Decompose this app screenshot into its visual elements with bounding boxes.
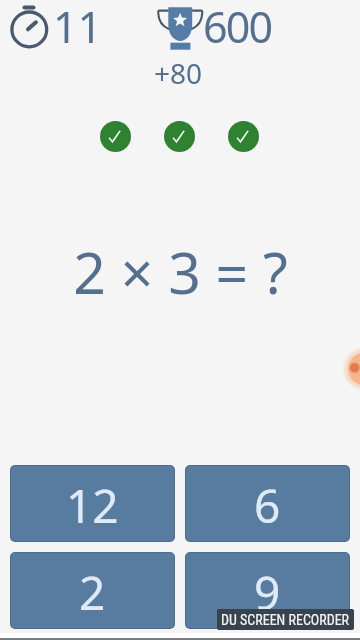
button[interactable]: 2	[10, 552, 175, 629]
staticText: +80	[154, 54, 203, 92]
button[interactable]: 9	[185, 552, 350, 629]
staticText: 2 × 3 = ?	[73, 233, 288, 311]
staticText: 12	[66, 474, 119, 537]
staticText: 6	[254, 474, 281, 537]
staticText: 9	[254, 561, 281, 624]
other: Score	[155, 2, 205, 54]
staticText: 2	[79, 561, 106, 624]
staticText: 600	[203, 0, 272, 56]
staticText: DU SCREEN RECORDER	[221, 612, 350, 628]
button[interactable]: 12	[10, 465, 175, 542]
button[interactable]: 6	[185, 465, 350, 542]
staticText: 11	[53, 0, 103, 56]
other: Timer	[5, 2, 55, 52]
